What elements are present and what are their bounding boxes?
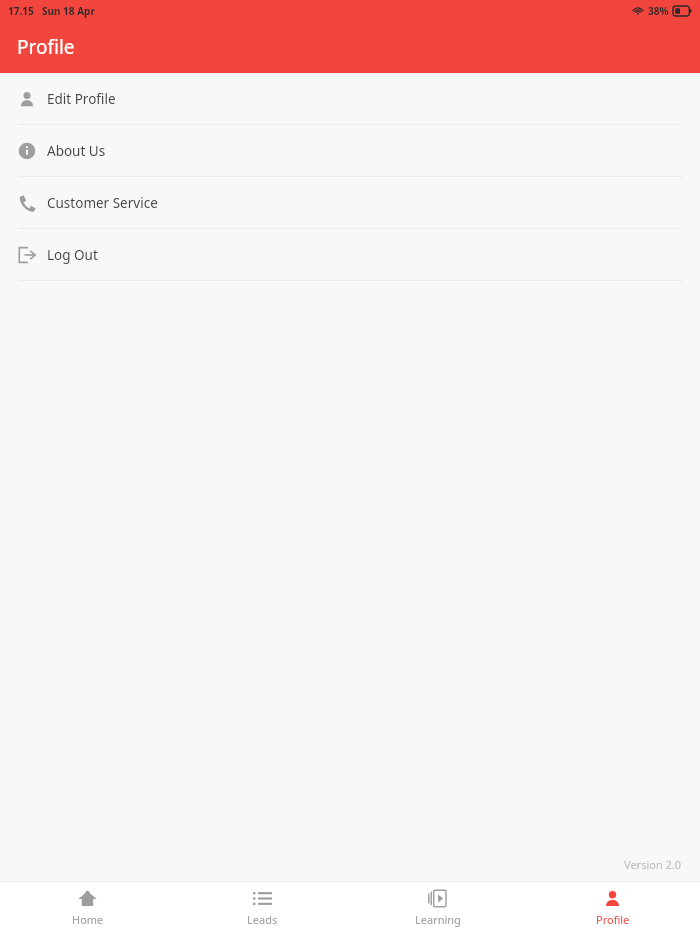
button[interactable]: Edit Profile	[0, 73, 700, 124]
staticText: Leads	[247, 912, 278, 927]
button[interactable]: About Us	[0, 125, 700, 176]
button[interactable]: Home	[0, 882, 175, 934]
button[interactable]: Learning	[350, 882, 525, 934]
staticText: 38%	[648, 4, 669, 18]
button[interactable]: Customer Service	[0, 177, 700, 228]
staticText: 17.15	[8, 4, 34, 18]
button[interactable]: Leads	[175, 882, 350, 934]
staticText: About Us	[47, 142, 106, 160]
staticText: Log Out	[47, 246, 98, 264]
button[interactable]: Log Out	[0, 229, 700, 280]
button[interactable]: Profile	[525, 882, 700, 934]
staticText: Edit Profile	[47, 90, 116, 108]
staticText: Profile	[596, 912, 630, 927]
staticText: Customer Service	[47, 194, 158, 212]
staticText: Sun 18 Apr	[42, 4, 95, 18]
staticText: Home	[72, 912, 104, 927]
staticText: Version 2.0	[624, 857, 682, 872]
staticText: Learning	[415, 912, 461, 927]
staticText: Profile	[17, 34, 75, 60]
